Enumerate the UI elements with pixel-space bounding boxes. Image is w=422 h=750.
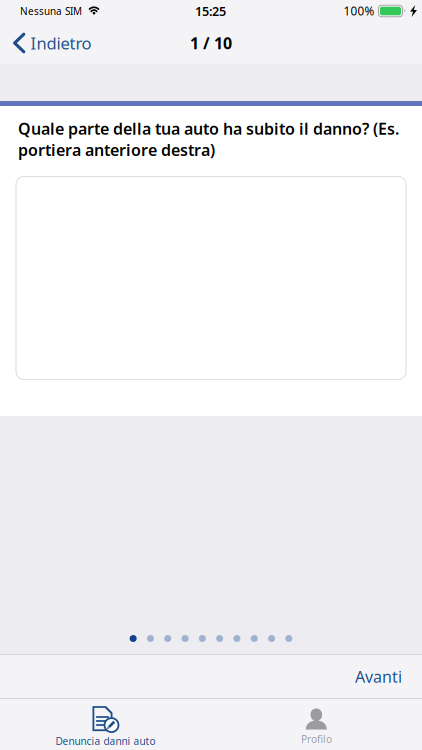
- button[interactable]: Avanti: [335, 654, 422, 699]
- button[interactable]: Denuncia danni auto: [0, 701, 211, 748]
- staticText: 15:25: [195, 2, 226, 20]
- button[interactable]: Indietro: [0, 22, 102, 64]
- staticText: Profilo: [301, 732, 332, 746]
- button[interactable]: Profilo: [211, 703, 422, 746]
- staticText: 1 / 10: [190, 32, 232, 54]
- staticText: Denuncia danni auto: [55, 734, 155, 748]
- staticText: 100%: [343, 3, 374, 19]
- staticText: Avanti: [355, 666, 402, 687]
- staticText: Nessuna SIM: [20, 4, 82, 18]
- staticText: Quale parte della tua auto ha subito il …: [18, 118, 399, 160]
- staticText: Indietro: [31, 32, 92, 54]
